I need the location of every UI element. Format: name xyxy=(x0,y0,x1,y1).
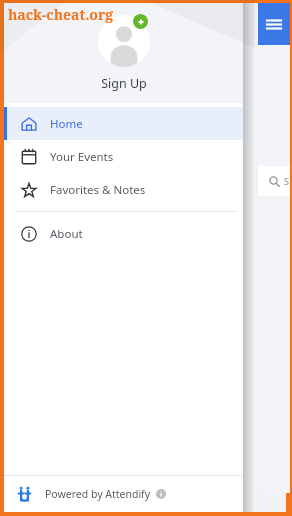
button[interactable]: Your Events xyxy=(4,140,243,173)
button[interactable]: Information xyxy=(156,489,166,499)
staticText: hack-cheat.org xyxy=(8,5,114,24)
button[interactable]: Home xyxy=(4,107,243,140)
button[interactable]: Powered by Attendify xyxy=(4,476,243,512)
staticText: Favorites & Notes xyxy=(50,182,146,198)
staticText: S xyxy=(284,175,289,187)
staticText: Powered by Attendify xyxy=(45,487,151,501)
button[interactable]: Favorites & Notes xyxy=(4,173,243,206)
staticText: Your Events xyxy=(50,149,114,165)
staticText: Sign Up xyxy=(101,75,147,92)
button[interactable]: Search xyxy=(258,166,290,196)
button[interactable]: Sign up with profile photo xyxy=(97,14,151,68)
button[interactable]: About xyxy=(4,217,243,250)
staticText: Home xyxy=(50,116,83,132)
staticText: About xyxy=(50,226,83,242)
button[interactable]: Open navigation menu xyxy=(258,3,290,45)
